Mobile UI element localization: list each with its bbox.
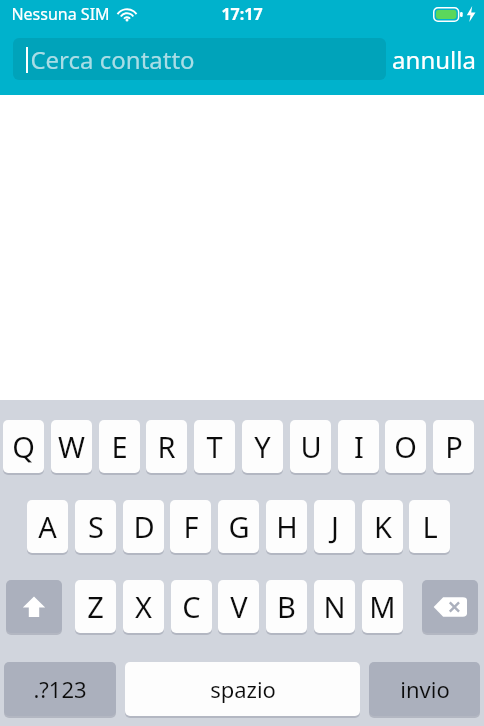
other: Battery	[433, 7, 463, 22]
button[interactable]: X	[123, 580, 164, 633]
button[interactable]: J	[314, 500, 355, 553]
button[interactable]: M	[362, 580, 403, 633]
button[interactable]: H	[266, 500, 307, 553]
staticText: C	[182, 587, 201, 626]
button[interactable]: O	[385, 420, 426, 473]
button[interactable]: P	[433, 420, 474, 473]
button[interactable]: V	[218, 580, 259, 633]
button[interactable]: Cerca contatto	[13, 38, 386, 80]
staticText: 17:17	[221, 3, 263, 25]
button[interactable]: S	[75, 500, 116, 553]
button[interactable]: I	[338, 420, 379, 473]
button[interactable]: W	[51, 420, 92, 473]
staticText: B	[277, 587, 296, 626]
button[interactable]: invio	[369, 662, 480, 716]
button[interactable]: K	[362, 500, 403, 553]
button[interactable]: F	[170, 500, 211, 553]
staticText: Y	[254, 427, 271, 466]
button[interactable]: Y	[242, 420, 283, 473]
staticText: Nessuna SIM	[11, 3, 110, 25]
staticText: R	[157, 427, 176, 466]
button[interactable]: C	[171, 580, 212, 633]
button[interactable]: Q	[3, 420, 44, 473]
staticText: O	[394, 427, 417, 466]
staticText: spazio	[210, 674, 276, 704]
staticText: .?123	[33, 674, 87, 704]
staticText: invio	[400, 674, 450, 704]
button[interactable]: Shift	[6, 580, 62, 633]
button[interactable]: E	[99, 420, 140, 473]
button[interactable]: .?123	[4, 662, 116, 716]
staticText: W	[58, 427, 85, 466]
staticText: E	[111, 427, 128, 466]
staticText: I	[354, 427, 364, 466]
staticText: A	[38, 507, 57, 546]
staticText: H	[276, 507, 298, 546]
staticText: K	[374, 507, 392, 546]
staticText: S	[88, 507, 104, 546]
button[interactable]: U	[290, 420, 331, 473]
button[interactable]: Z	[75, 580, 116, 633]
button[interactable]: N	[314, 580, 355, 633]
staticText: Z	[87, 587, 104, 626]
staticText: T	[206, 427, 223, 466]
button[interactable]: A	[27, 500, 68, 553]
staticText: G	[228, 507, 250, 546]
button[interactable]: D	[123, 500, 164, 553]
staticText: P	[445, 427, 463, 466]
staticText: D	[133, 507, 155, 546]
button[interactable]: B	[266, 580, 307, 633]
staticText: annulla	[392, 43, 476, 76]
button[interactable]: spazio	[125, 662, 360, 716]
button[interactable]: L	[409, 500, 450, 553]
staticText: Cerca contatto	[30, 43, 195, 76]
staticText: L	[422, 507, 438, 546]
staticText: F	[183, 507, 199, 546]
staticText: N	[323, 587, 346, 626]
staticText: M	[369, 587, 396, 626]
button[interactable]: Backspace	[422, 580, 478, 633]
button[interactable]: G	[218, 500, 259, 553]
staticText: V	[230, 587, 248, 626]
button[interactable]: R	[146, 420, 187, 473]
staticText: Q	[12, 427, 35, 466]
button[interactable]: annulla	[392, 38, 476, 80]
staticText: U	[300, 427, 322, 466]
button[interactable]: T	[194, 420, 235, 473]
staticText: J	[331, 507, 339, 546]
staticText: X	[135, 587, 152, 626]
other: Wi-Fi	[117, 7, 137, 22]
